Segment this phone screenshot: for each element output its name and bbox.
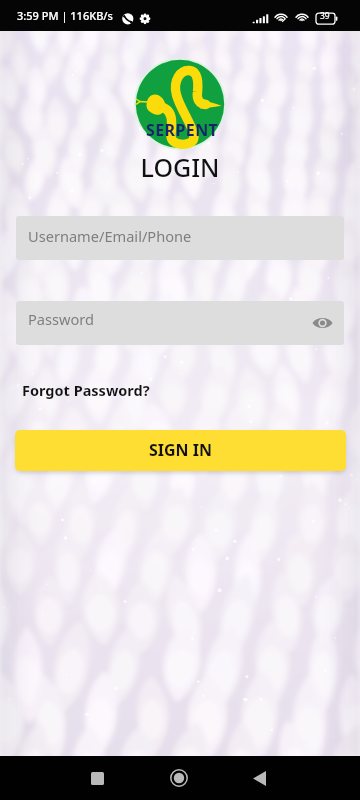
button[interactable]: Show password bbox=[309, 310, 335, 336]
button[interactable]: Forgot Password? bbox=[22, 380, 150, 400]
button[interactable]: Password bbox=[16, 301, 344, 345]
staticText: 39 bbox=[320, 10, 330, 22]
button[interactable]: Home bbox=[157, 765, 200, 791]
staticText: SERPENT bbox=[146, 119, 219, 141]
button[interactable]: Back bbox=[238, 766, 281, 790]
staticText: Username/Email/Phone bbox=[28, 226, 192, 246]
staticText: Forgot Password? bbox=[22, 380, 150, 400]
staticText: Password bbox=[28, 309, 95, 329]
staticText: 3:59 PM | 116KB/s bbox=[17, 8, 113, 23]
button[interactable]: Username/Email/Phone bbox=[16, 216, 344, 260]
staticText: SIGN IN bbox=[149, 439, 213, 461]
button[interactable]: Recent apps bbox=[76, 767, 119, 789]
button[interactable]: SIGN IN bbox=[15, 430, 346, 471]
staticText: LOGIN bbox=[0, 150, 360, 184]
